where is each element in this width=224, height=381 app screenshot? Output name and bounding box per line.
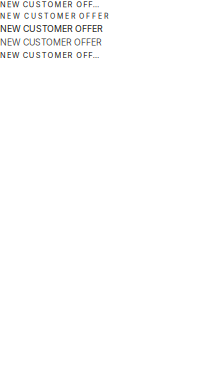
staticText: N E W C U S T O M E R O F F E R [0, 12, 108, 20]
staticText: NEW CUSTOMER OFFER [0, 0, 103, 9]
staticText: NEW CUSTOMER OFFER [0, 37, 102, 48]
staticText: NEW CUSTOMER OFFER [0, 23, 103, 34]
staticText: NEW CUSTOMER OFFER [0, 51, 103, 60]
